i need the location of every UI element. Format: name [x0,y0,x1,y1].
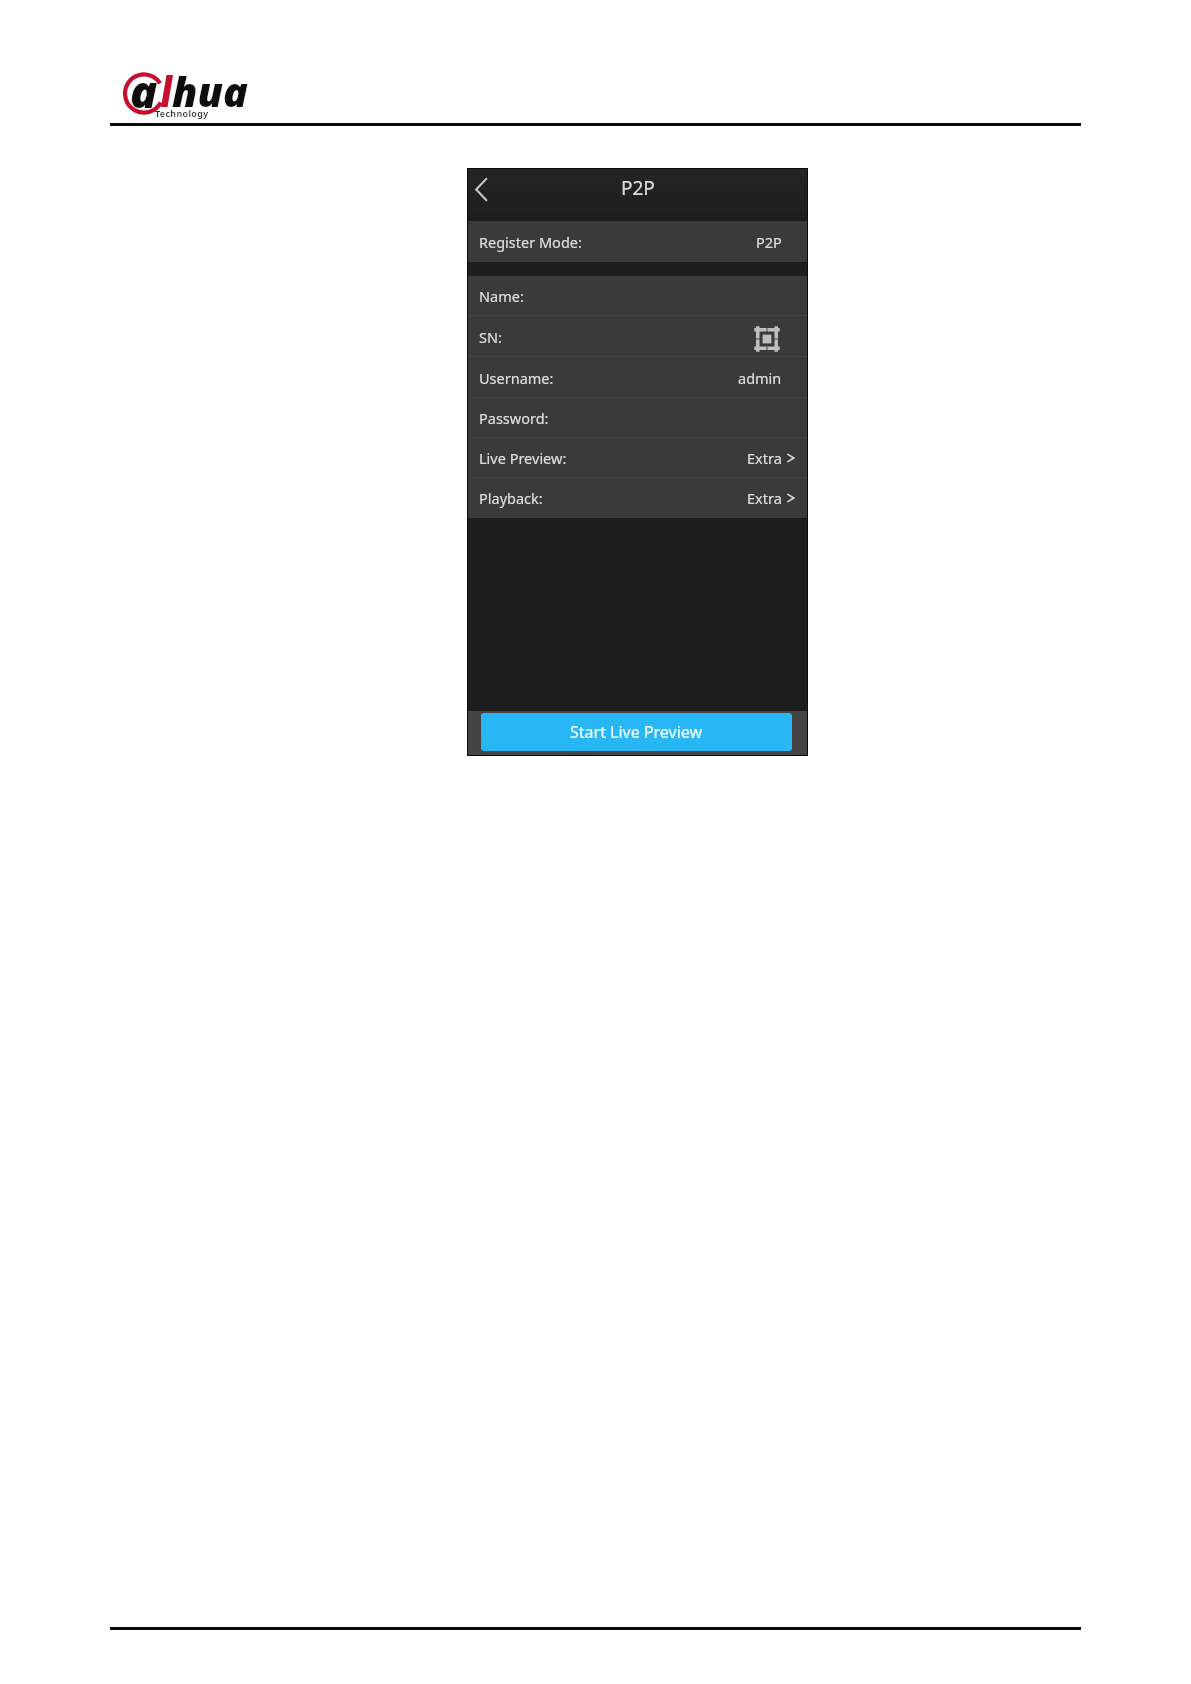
staticText: Start Live Preview [570,721,703,743]
button[interactable]: Name: [468,276,807,316]
button[interactable]: Back [463,171,499,207]
button[interactable]: Scan QR code [756,326,778,348]
staticText: a [130,60,158,118]
staticText: Extra [747,488,782,508]
staticText: admin [738,368,782,388]
staticText: Username: [479,368,554,388]
button[interactable]: Playback: [468,478,807,518]
staticText: Playback: [479,488,543,508]
button[interactable]: Live Preview: [468,438,807,478]
button[interactable]: Start Live Preview [481,713,792,751]
button[interactable]: SN: [468,316,807,357]
button[interactable]: Password: [468,398,807,438]
button[interactable]: Username: [468,357,807,398]
staticText: SN: [479,327,502,347]
staticText: P2P [756,232,782,252]
staticText: hua [172,63,248,119]
staticText: P2P [621,175,655,201]
staticText: Password: [479,408,549,428]
staticText: Name: [479,286,524,306]
button[interactable]: Register Mode: [468,221,807,262]
staticText: Extra [747,448,782,468]
staticText: Live Preview: [479,448,567,468]
staticText: Technology [155,107,209,119]
staticText: Register Mode: [479,232,582,252]
